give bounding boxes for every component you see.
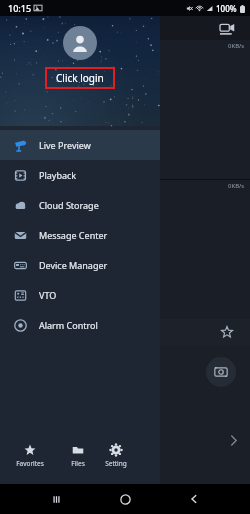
button[interactable]: Recents [43,486,69,512]
staticText: 4 [21,327,26,337]
button[interactable]: Favorite [218,323,236,341]
button[interactable]: Camera [216,17,238,39]
button[interactable]: Next [224,431,242,449]
staticText: 10:15 [8,2,32,14]
button[interactable]: Avatar [63,26,97,60]
staticText: Playback [39,169,77,181]
staticText: Favorites [16,459,44,468]
staticText: Files [71,459,85,468]
button[interactable]: Add channel [0,180,250,319]
staticText: Click login [56,71,104,85]
staticText: VTO [39,289,57,301]
button[interactable]: Cloud Storage [0,190,160,220]
staticText: 0KB/s [228,42,245,50]
staticText: Setting [105,459,127,468]
button[interactable]: Add channel [0,40,250,179]
staticText: Message Center [39,229,108,241]
button[interactable]: Device Manager [0,250,160,280]
button[interactable]: VTO [0,280,160,310]
button[interactable]: Click login [44,68,116,88]
button[interactable]: Playback [0,160,160,190]
button[interactable]: Message Center [0,220,160,250]
button[interactable]: Setting [102,442,130,470]
staticText: Device Manager [39,259,108,271]
button[interactable]: Favorites [6,442,54,470]
button[interactable]: Alarm Control [0,310,160,340]
staticText: Live Preview [39,139,91,151]
staticText: Cloud Storage [39,199,99,211]
button[interactable]: Back [181,486,207,512]
button[interactable]: Files [54,442,102,470]
button[interactable]: PTZ [113,430,133,450]
button[interactable]: Home [112,486,138,512]
button[interactable]: Live Preview [0,130,160,160]
staticText: 100% [216,3,237,14]
staticText: Alarm Control [39,319,98,331]
button[interactable]: Snapshot [206,357,236,387]
button[interactable]: Split screen 4 [14,323,32,341]
staticText: 0KB/s [228,182,245,190]
